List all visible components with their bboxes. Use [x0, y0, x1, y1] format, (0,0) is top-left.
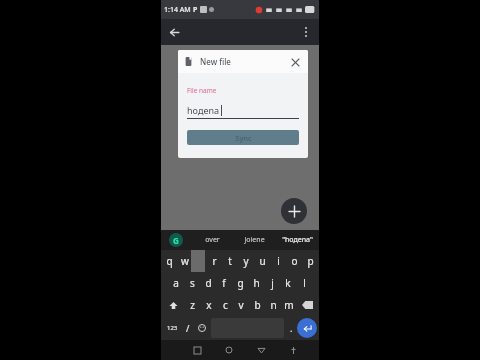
- staticText: c: [223, 298, 228, 312]
- staticText: .: [290, 322, 293, 334]
- button[interactable]: Back: [245, 340, 277, 360]
- staticText: z: [190, 298, 195, 312]
- button[interactable]: Google Assistant: [161, 230, 191, 250]
- staticText: l: [303, 276, 306, 290]
- staticText: i: [277, 254, 280, 268]
- button[interactable]: d: [200, 272, 216, 294]
- staticText: n: [270, 298, 277, 312]
- staticText: Sync: [235, 133, 252, 143]
- staticText: 123: [167, 324, 178, 332]
- button[interactable]: i: [270, 250, 286, 272]
- staticText: f: [222, 276, 226, 290]
- staticText: u: [259, 254, 266, 268]
- staticText: b: [254, 298, 261, 312]
- staticText: 1:14 AM: [164, 5, 191, 15]
- staticText: r: [212, 254, 217, 268]
- button[interactable]: Shift: [162, 294, 184, 316]
- button[interactable]: Enter: [297, 318, 317, 338]
- button[interactable]: h: [248, 272, 264, 294]
- button[interactable]: r: [207, 250, 222, 272]
- button[interactable]: Home: [213, 340, 245, 360]
- staticText: g: [237, 276, 244, 290]
- button[interactable]: b: [249, 294, 265, 316]
- button[interactable]: c: [217, 294, 233, 316]
- button[interactable]: n: [265, 294, 281, 316]
- staticText: m: [284, 298, 294, 312]
- staticText: p: [307, 254, 314, 268]
- button[interactable]: t: [222, 250, 238, 272]
- staticText: j: [271, 276, 274, 290]
- button[interactable]: m: [281, 294, 297, 316]
- staticText: v: [238, 298, 244, 312]
- staticText: P: [193, 5, 198, 15]
- button[interactable]: j: [264, 272, 280, 294]
- button[interactable]: .: [286, 318, 297, 338]
- staticText: hoдena: [187, 104, 220, 116]
- staticText: a: [173, 276, 179, 290]
- button[interactable]: Jolene: [233, 230, 276, 250]
- button[interactable]: k: [280, 272, 296, 294]
- staticText: y: [243, 254, 249, 268]
- button[interactable]: u: [254, 250, 270, 272]
- button[interactable]: 123: [163, 318, 181, 338]
- button[interactable]: Backspace: [297, 294, 318, 316]
- button[interactable]: q: [162, 250, 177, 272]
- button[interactable]: More options: [293, 19, 319, 45]
- staticText: k: [285, 276, 291, 290]
- staticText: New file: [200, 56, 231, 67]
- staticText: x: [206, 298, 212, 312]
- button[interactable]: /: [181, 318, 195, 338]
- button[interactable]: l: [296, 272, 312, 294]
- staticText: s: [190, 276, 195, 290]
- button[interactable]: g: [232, 272, 248, 294]
- staticText: File name: [187, 86, 217, 95]
- button[interactable]: e: [192, 250, 207, 272]
- staticText: G: [173, 235, 179, 246]
- button[interactable]: x: [201, 294, 217, 316]
- button[interactable]: Emoji: [195, 318, 209, 338]
- button[interactable]: Sync: [187, 130, 299, 145]
- button[interactable]: f: [216, 272, 232, 294]
- staticText: over: [205, 235, 220, 245]
- button[interactable]: v: [233, 294, 249, 316]
- staticText: h: [253, 276, 260, 290]
- staticText: "hoдena": [282, 235, 313, 245]
- button[interactable]: p: [302, 250, 318, 272]
- button[interactable]: Close: [288, 55, 302, 69]
- button[interactable]: w: [177, 250, 192, 272]
- button[interactable]: y: [238, 250, 254, 272]
- button[interactable]: s: [184, 272, 200, 294]
- staticText: w: [181, 254, 189, 268]
- button[interactable]: Add: [281, 198, 307, 224]
- button[interactable]: "hoдena": [276, 230, 319, 250]
- button[interactable]: o: [286, 250, 302, 272]
- button[interactable]: Back: [161, 19, 187, 45]
- button[interactable]: Keyboard hide: [277, 340, 309, 360]
- staticText: t: [228, 254, 232, 268]
- button[interactable]: z: [184, 294, 201, 316]
- staticText: /: [186, 322, 190, 334]
- button[interactable]: Recents: [181, 340, 213, 360]
- staticText: d: [205, 276, 212, 290]
- staticText: o: [291, 254, 298, 268]
- button[interactable]: over: [191, 230, 233, 250]
- staticText: Jolene: [244, 235, 265, 245]
- button[interactable]: a: [168, 272, 184, 294]
- staticText: q: [166, 254, 173, 268]
